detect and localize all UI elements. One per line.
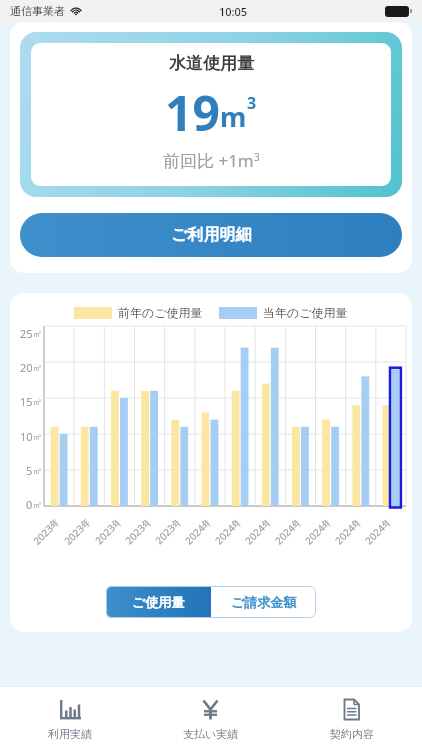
staticText: 支払い実績 [183, 727, 239, 741]
button[interactable]: ご請求金額 [211, 586, 316, 618]
staticText: 2024年6月 [331, 516, 362, 547]
staticText: ご使用量 [132, 594, 185, 610]
staticText: 2024年7月 [361, 516, 392, 547]
staticText: 当年のご使用量 [263, 305, 348, 320]
staticText: 2024年5月 [301, 516, 332, 547]
staticText: 契約内容 [330, 727, 374, 741]
staticText: ㎥ [33, 328, 42, 339]
staticText: 前年のご使用量 [118, 305, 203, 320]
staticText: 2023年11月 [121, 516, 152, 547]
staticText: 5 [26, 463, 33, 478]
staticText: ㎥ [33, 396, 42, 407]
staticText: 2024年4月 [271, 516, 302, 547]
button[interactable]: ご利用明細 [20, 213, 402, 257]
staticText: 2023年12月 [151, 516, 182, 547]
staticText: ㎥ [33, 431, 42, 442]
staticText: 25 [20, 326, 33, 341]
staticText: 19 [165, 80, 220, 145]
button[interactable]: 契約内容 [281, 687, 422, 750]
staticText: ㎥ [33, 499, 42, 510]
staticText: 2024年3月 [241, 516, 272, 547]
staticText: 3 [247, 92, 257, 114]
staticText: m [220, 98, 247, 135]
staticText: 2024年2月 [211, 516, 242, 547]
staticText: 10:05 [219, 4, 248, 19]
staticText: ㎥ [33, 465, 42, 476]
staticText: 通信事業者 [10, 4, 65, 18]
button[interactable]: 支払い実績 [140, 687, 281, 750]
staticText: 0 [26, 497, 33, 512]
staticText: 3 [254, 150, 260, 164]
staticText: 水道使用量 [169, 53, 254, 74]
staticText: 2023年10月 [91, 516, 122, 547]
staticText: ご利用明細 [171, 225, 252, 245]
staticText: 15 [20, 394, 33, 409]
staticText: ご請求金額 [231, 594, 297, 610]
staticText: ㎥ [33, 362, 42, 373]
staticText: 2023年8月 [30, 516, 61, 548]
staticText: 利用実績 [48, 727, 92, 741]
staticText: 20 [20, 360, 33, 375]
staticText: 10 [20, 429, 33, 444]
button[interactable]: 利用実績 [0, 687, 140, 750]
staticText: 前回比 +1m [163, 149, 254, 172]
button[interactable]: ご使用量 [106, 586, 211, 618]
staticText: 2024年1月 [181, 516, 212, 547]
staticText: 2023年9月 [61, 516, 92, 548]
